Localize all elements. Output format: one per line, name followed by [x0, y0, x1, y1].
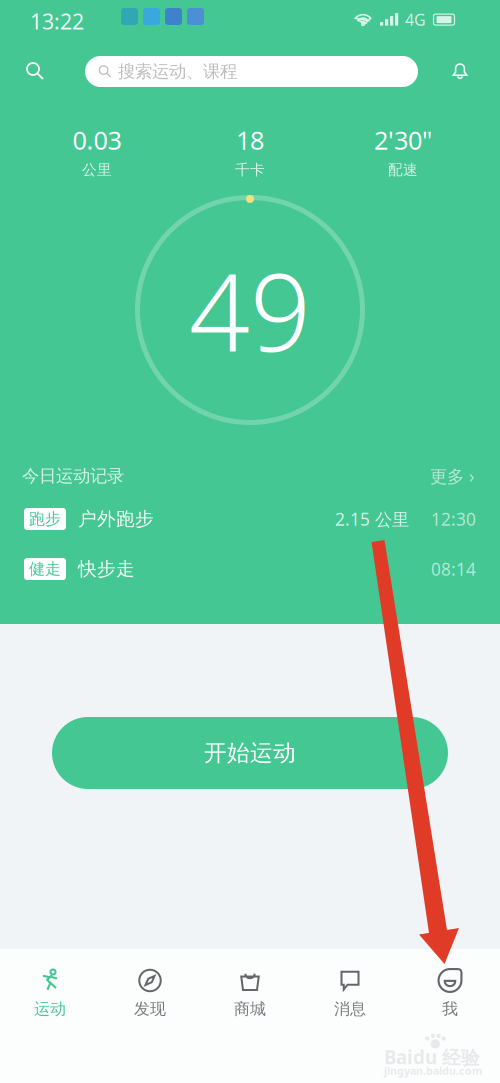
staticText: jingyan.baidu.com	[384, 1064, 482, 1078]
staticText: Baidu 经验	[384, 1045, 480, 1069]
staticText: 2.15 公里	[335, 507, 409, 530]
staticText: 49	[189, 239, 311, 381]
button[interactable]: Notifications	[440, 51, 480, 91]
button[interactable]: 跑步	[0, 494, 500, 544]
staticText: 消息	[334, 999, 366, 1019]
staticText: 今日运动记录	[22, 465, 124, 487]
staticText: 2'30"	[374, 123, 432, 157]
button[interactable]: 健走	[0, 544, 500, 594]
staticText: 快步走	[78, 557, 135, 580]
staticText: 商城	[234, 999, 266, 1019]
staticText: 千卡	[235, 161, 265, 179]
staticText: 18	[236, 123, 264, 157]
staticText: 健走	[29, 559, 61, 579]
button[interactable]: 搜索运动、课程	[85, 56, 418, 87]
staticText: 更多 ›	[430, 464, 474, 487]
staticText: 08:14	[431, 557, 476, 580]
button[interactable]: 运动	[0, 949, 100, 1083]
button[interactable]: 消息	[300, 949, 400, 1083]
staticText: 开始运动	[204, 739, 296, 767]
button[interactable]: 我	[400, 949, 500, 1083]
button[interactable]: 今日运动记录	[0, 458, 500, 494]
staticText: 搜索运动、课程	[118, 61, 237, 82]
staticText: 我	[442, 999, 458, 1019]
staticText: 运动	[34, 999, 66, 1019]
button[interactable]: 开始运动	[52, 717, 448, 789]
staticText: 跑步	[29, 509, 61, 529]
staticText: 户外跑步	[78, 507, 154, 530]
button[interactable]: 发现	[100, 949, 200, 1083]
staticText: 0.03	[72, 123, 121, 157]
button[interactable]: 商城	[200, 949, 300, 1083]
staticText: 配速	[388, 161, 418, 179]
staticText: 发现	[134, 999, 166, 1019]
staticText: 13:22	[30, 7, 84, 35]
button[interactable]: Scan	[15, 51, 55, 91]
staticText: 12:30	[431, 507, 476, 530]
staticText: 公里	[82, 161, 112, 179]
staticText: 4G	[405, 9, 426, 30]
